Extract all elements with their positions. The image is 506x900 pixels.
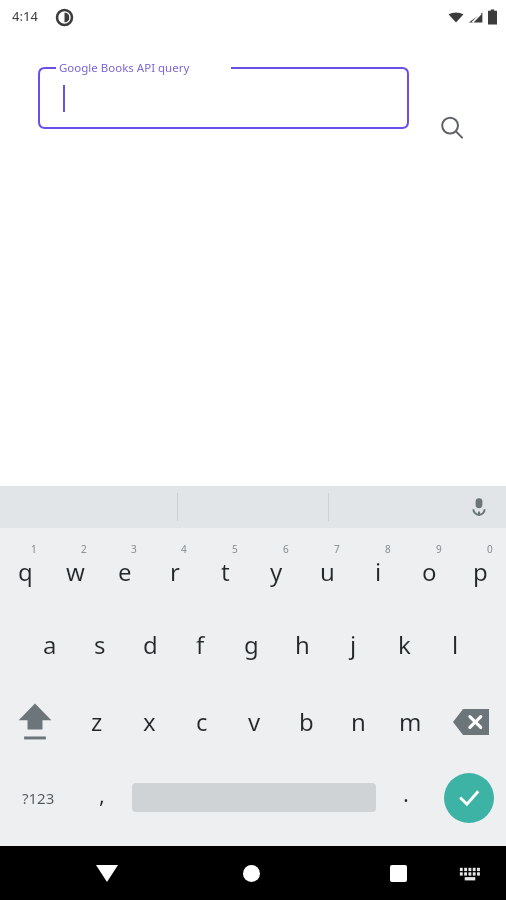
- button[interactable]: Recent apps: [372, 847, 424, 899]
- button[interactable]: b: [280, 683, 332, 760]
- button[interactable]: Backspace: [436, 683, 506, 760]
- button[interactable]: .: [383, 770, 429, 826]
- staticText: v: [248, 705, 261, 738]
- staticText: f: [196, 628, 205, 661]
- button[interactable]: ?123: [5, 770, 71, 826]
- staticText: 4: [181, 542, 187, 556]
- button[interactable]: 4: [150, 534, 200, 606]
- button[interactable]: 3: [100, 534, 150, 606]
- staticText: 8: [385, 542, 391, 556]
- staticText: ,: [99, 779, 105, 809]
- button[interactable]: g: [226, 606, 277, 683]
- staticText: p: [473, 555, 488, 588]
- staticText: y: [270, 555, 283, 588]
- staticText: b: [299, 705, 314, 738]
- button[interactable]: 1: [0, 534, 50, 606]
- button[interactable]: 5: [200, 534, 251, 606]
- staticText: Google Books API query: [59, 60, 190, 76]
- button[interactable]: Switch input method: [448, 851, 492, 895]
- staticText: c: [196, 705, 208, 738]
- staticText: 6: [283, 542, 289, 556]
- staticText: i: [375, 555, 382, 588]
- button[interactable]: z: [70, 683, 123, 760]
- button[interactable]: k: [379, 606, 430, 683]
- staticText: e: [118, 555, 132, 588]
- button[interactable]: Shift: [0, 683, 70, 760]
- staticText: 7: [334, 542, 340, 556]
- button[interactable]: a: [25, 606, 75, 683]
- staticText: 5: [232, 542, 238, 556]
- button[interactable]: Back: [81, 847, 133, 899]
- staticText: ?123: [22, 788, 55, 808]
- button[interactable]: 2: [50, 534, 100, 606]
- staticText: x: [143, 705, 156, 738]
- staticText: j: [350, 628, 357, 661]
- button[interactable]: x: [123, 683, 176, 760]
- button[interactable]: Enter: [444, 773, 494, 823]
- staticText: g: [244, 628, 259, 661]
- staticText: u: [320, 555, 335, 588]
- staticText: 0: [487, 542, 493, 556]
- staticText: t: [221, 555, 230, 588]
- button[interactable]: m: [384, 683, 436, 760]
- button[interactable]: 6: [251, 534, 302, 606]
- staticText: k: [398, 628, 411, 661]
- staticText: 2: [81, 542, 87, 556]
- staticText: 3: [131, 542, 137, 556]
- staticText: s: [94, 628, 106, 661]
- button[interactable]: 7: [302, 534, 353, 606]
- staticText: z: [91, 705, 103, 738]
- button[interactable]: f: [175, 606, 226, 683]
- staticText: 1: [31, 542, 37, 556]
- staticText: l: [452, 628, 459, 661]
- staticText: h: [295, 628, 310, 661]
- staticText: n: [351, 705, 366, 738]
- staticText: o: [422, 555, 437, 588]
- button[interactable]: ,: [76, 770, 128, 826]
- staticText: m: [399, 705, 422, 738]
- staticText: 9: [436, 542, 442, 556]
- button[interactable]: c: [176, 683, 228, 760]
- staticText: d: [143, 628, 158, 661]
- button[interactable]: d: [125, 606, 175, 683]
- button[interactable]: j: [328, 606, 379, 683]
- button[interactable]: Search: [429, 105, 475, 151]
- button[interactable]: Google Books API query: [38, 67, 409, 129]
- staticText: w: [66, 555, 85, 588]
- button[interactable]: l: [430, 606, 481, 683]
- staticText: q: [18, 555, 33, 588]
- button[interactable]: 8: [353, 534, 404, 606]
- button[interactable]: s: [75, 606, 125, 683]
- button[interactable]: Home: [225, 847, 277, 899]
- staticText: a: [43, 628, 57, 661]
- button[interactable]: 0: [455, 534, 506, 606]
- staticText: r: [170, 555, 180, 588]
- button[interactable]: Voice input: [460, 488, 498, 526]
- button[interactable]: 9: [404, 534, 455, 606]
- staticText: 4:14: [12, 7, 38, 25]
- button[interactable]: v: [228, 683, 280, 760]
- staticText: .: [403, 778, 409, 808]
- button[interactable]: h: [277, 606, 328, 683]
- button[interactable]: n: [332, 683, 384, 760]
